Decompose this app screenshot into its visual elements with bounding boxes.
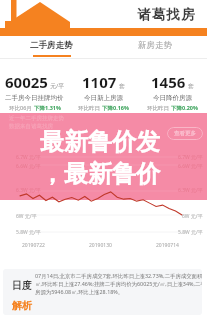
staticText: 1107 bbox=[82, 72, 117, 92]
staticText: 今日降价房源 bbox=[153, 94, 192, 102]
staticText: 二手房走势 bbox=[30, 40, 73, 51]
staticText: 6.7W 元/平 bbox=[178, 154, 203, 161]
staticText: 解析 bbox=[12, 299, 32, 312]
staticText: 6.6W 元/平 bbox=[178, 163, 203, 170]
staticText: 查看更多 bbox=[174, 130, 196, 137]
staticText: 环比昨日 bbox=[78, 104, 102, 112]
staticText: 二手房今日挂牌均价 bbox=[5, 94, 64, 102]
staticText: 6.6W 元/平 bbox=[16, 163, 41, 170]
staticText: 6W 元/平 bbox=[182, 213, 203, 220]
staticText: 新房走势 bbox=[138, 40, 172, 51]
button[interactable]: 二手房走势 bbox=[0, 36, 103, 58]
staticText: 下降0.20% bbox=[171, 104, 198, 112]
staticText: 07月14日,北京市二手房成交7套,环比昨日上涨32.73%,二手房成交面积为5… bbox=[35, 272, 202, 296]
staticText: 20190130 bbox=[89, 242, 112, 249]
staticText: 20190722 bbox=[22, 242, 45, 249]
staticText: 20190714 bbox=[156, 242, 179, 249]
staticText: ，最新鲁价 bbox=[0, 159, 160, 189]
staticText: 下降0.16% bbox=[102, 104, 129, 112]
staticText: 6.3W 元/平 bbox=[16, 187, 41, 194]
staticText: 套 bbox=[119, 82, 125, 90]
staticText: 6.3W 元/平 bbox=[178, 187, 203, 194]
staticText: 数据来自诸葛找房 bbox=[9, 123, 53, 130]
staticText: 今日新上房源 bbox=[84, 94, 123, 102]
staticText: 日度 bbox=[12, 279, 32, 292]
staticText: 诸葛找房 bbox=[137, 6, 195, 23]
staticText: 60025 bbox=[5, 72, 48, 92]
staticText: 下降1.31% bbox=[34, 104, 61, 112]
staticText: 6.7W 元/平 bbox=[16, 154, 41, 161]
staticText: 5.8W 元/平 bbox=[16, 229, 41, 236]
button[interactable]: 查看更多 bbox=[167, 127, 203, 140]
staticText: 1456 bbox=[151, 72, 186, 92]
staticText: 元/平 bbox=[50, 82, 65, 90]
staticText: 最新鲁价发 bbox=[0, 127, 160, 157]
staticText: 6W 元/平 bbox=[16, 213, 37, 220]
staticText: 环比昨日 bbox=[147, 104, 171, 112]
staticText: 近一年二手房挂牌走势 bbox=[9, 115, 64, 122]
staticText: 环比06月 bbox=[9, 104, 34, 112]
staticText: 套 bbox=[188, 82, 194, 90]
staticText: 5.8W 元/平 bbox=[178, 229, 203, 236]
button[interactable]: 新房走势 bbox=[103, 36, 207, 58]
